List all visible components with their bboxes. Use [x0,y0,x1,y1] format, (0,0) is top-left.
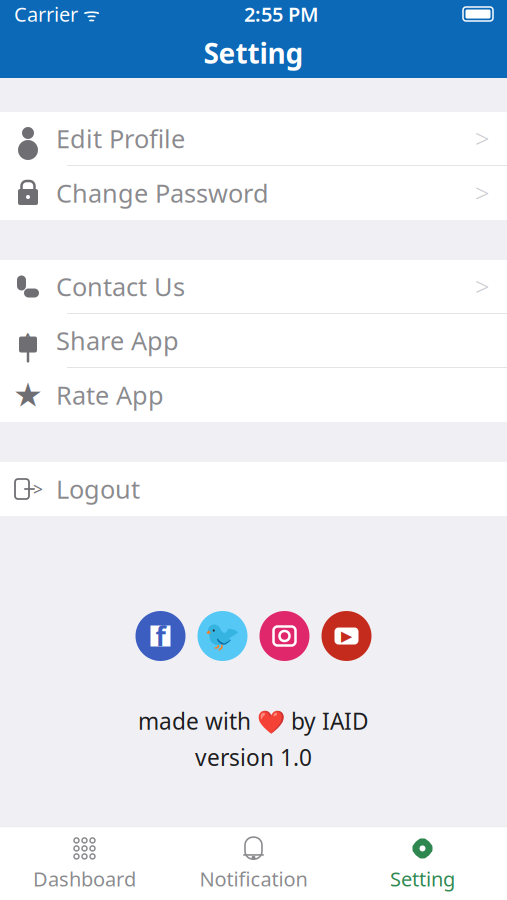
staticText: Notification [199,865,307,892]
button[interactable]: YouTube [321,611,371,661]
staticText: version 1.0 [195,742,312,772]
button[interactable]: Setting [338,827,507,900]
staticText: > [475,176,489,210]
button[interactable]: Edit Profile [0,112,507,166]
staticText: made with ❤️ by IAID [138,706,369,736]
staticText: ★ [13,376,43,414]
staticText: f [155,618,165,654]
button[interactable]: Instagram [259,611,309,661]
staticText: > [475,270,489,303]
button[interactable]: Change Password [0,166,507,220]
button[interactable]: Contact Us [0,260,507,314]
staticText: > [475,122,489,155]
staticText: Share App [56,324,179,357]
staticText: ^ [23,328,33,351]
staticText: Edit Profile [56,122,185,155]
button[interactable]: Twitter [197,611,247,661]
staticText: Change Password [56,176,269,210]
staticText: Contact Us [56,270,185,303]
staticText: > [33,477,43,500]
staticText: Carrier [14,1,78,27]
staticText: Setting [203,34,303,72]
button[interactable]: Facebook [135,611,185,661]
button[interactable]: ★ [0,368,507,422]
staticText: 🐦 [204,619,241,653]
button[interactable]: ^ [0,314,507,368]
staticText: Rate App [56,378,164,412]
staticText: Setting [390,865,455,892]
staticText: 2:55 PM [244,1,319,27]
staticText: Logout [56,472,140,506]
staticText: ᯤ [78,2,100,26]
staticText: ▶ [341,628,352,644]
button[interactable]: Notification [169,827,338,900]
staticText: Dashboard [33,865,136,892]
button[interactable]: > [0,462,507,516]
button[interactable]: Dashboard [0,827,169,900]
